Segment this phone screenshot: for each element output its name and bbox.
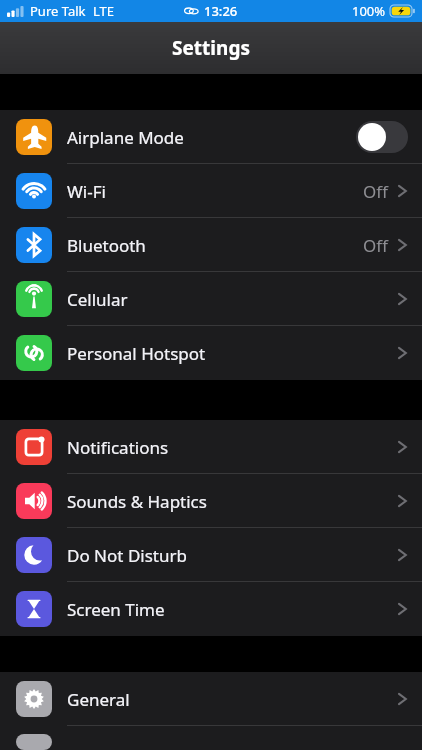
staticText: Wi-Fi (67, 180, 106, 203)
staticText: Screen Time (67, 598, 165, 621)
staticText: Off (363, 180, 388, 203)
staticText: 13:26 (204, 2, 238, 20)
staticText: Settings (172, 35, 250, 61)
staticText: Pure Talk (30, 2, 86, 20)
staticText: General (67, 688, 130, 711)
button[interactable]: Wi-Fi (0, 164, 422, 218)
other: Open (397, 690, 408, 708)
button[interactable]: General (0, 672, 422, 726)
button[interactable]: Personal Hotspot (0, 326, 422, 380)
button[interactable]: Bluetooth (0, 218, 422, 272)
staticText: Airplane Mode (67, 126, 184, 149)
other: Open (397, 546, 408, 564)
button[interactable]: Cellular (0, 272, 422, 326)
staticText: Notifications (67, 436, 169, 459)
button[interactable]: Notifications (0, 420, 422, 474)
button[interactable]: Airplane Mode toggle (356, 121, 408, 153)
other: Open (397, 600, 408, 618)
button[interactable]: Do Not Disturb (0, 528, 422, 582)
staticText: Cellular (67, 288, 128, 311)
staticText: Do Not Disturb (67, 544, 187, 567)
staticText: LTE (93, 2, 115, 20)
staticText: Sounds & Haptics (67, 490, 207, 513)
button[interactable]: Sounds & Haptics (0, 474, 422, 528)
staticText: Off (363, 234, 388, 257)
other: Open (397, 236, 408, 254)
other: Open (397, 344, 408, 362)
other: Open (397, 438, 408, 456)
other: Open (397, 492, 408, 510)
staticText: Personal Hotspot (67, 342, 206, 365)
other: Open (397, 182, 408, 200)
staticText: Bluetooth (67, 234, 146, 257)
button[interactable]: Airplane Mode (0, 110, 422, 164)
other: Open (397, 290, 408, 308)
staticText: 100% (352, 2, 386, 20)
button[interactable]: Screen Time (0, 582, 422, 636)
